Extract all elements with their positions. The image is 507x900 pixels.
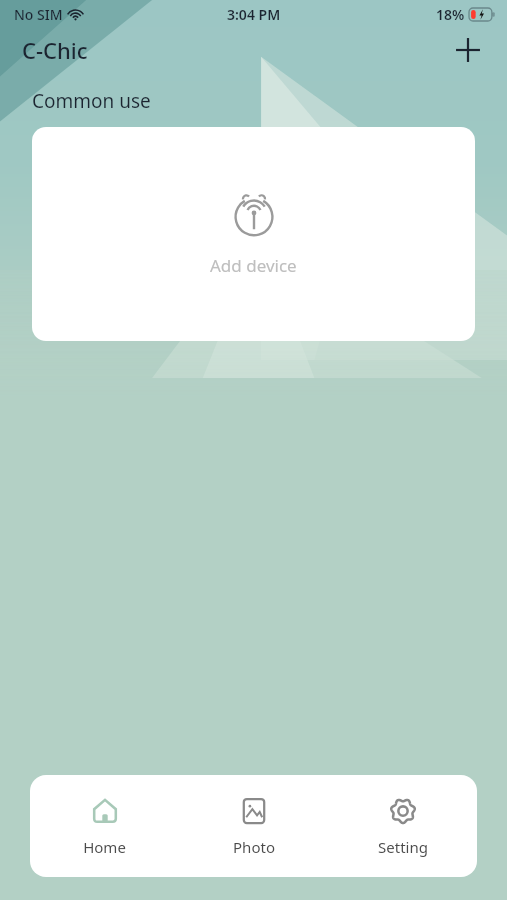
- button[interactable]: Home: [30, 786, 179, 867]
- button[interactable]: Photo: [179, 786, 328, 867]
- staticText: Setting: [378, 837, 428, 857]
- staticText: Photo: [233, 837, 275, 857]
- button[interactable]: Setting: [328, 786, 477, 867]
- staticText: Common use: [32, 88, 151, 114]
- staticText: No SIM: [14, 5, 63, 24]
- staticText: Home: [83, 837, 126, 857]
- staticText: 18%: [436, 5, 465, 24]
- staticText: 3:04 PM: [227, 5, 281, 24]
- button[interactable]: Add device: [451, 33, 485, 67]
- button[interactable]: Add device: [32, 127, 475, 341]
- staticText: C-Chic: [22, 35, 88, 65]
- staticText: Add device: [210, 254, 297, 277]
